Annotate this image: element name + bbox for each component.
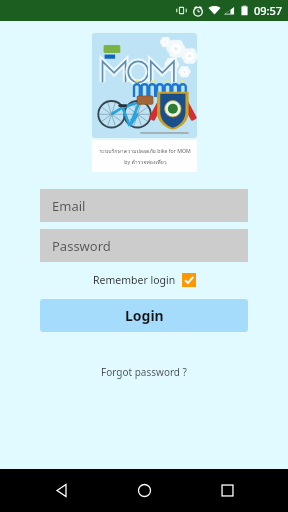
button[interactable]: Forgot password ?: [91, 361, 197, 383]
button[interactable]: Home: [122, 469, 166, 512]
staticText: Login: [125, 306, 164, 325]
staticText: Password: [52, 237, 111, 255]
staticText: Email: [52, 197, 86, 215]
staticText: by ตำรวจท่องเที่ยว: [124, 158, 167, 166]
button[interactable]: Back: [39, 469, 83, 512]
staticText: 09:57: [254, 3, 283, 18]
staticText: Forgot password ?: [101, 365, 187, 379]
button[interactable]: Remember login: [87, 270, 202, 290]
staticText: ระบบรักษาความปลอดภัย bike for MOM: [99, 147, 191, 155]
button[interactable]: Recent apps: [205, 469, 249, 512]
button[interactable]: Login: [40, 299, 248, 332]
button[interactable]: Email: [40, 189, 248, 222]
staticText: Remember login: [93, 273, 176, 287]
button[interactable]: Password: [40, 229, 248, 262]
